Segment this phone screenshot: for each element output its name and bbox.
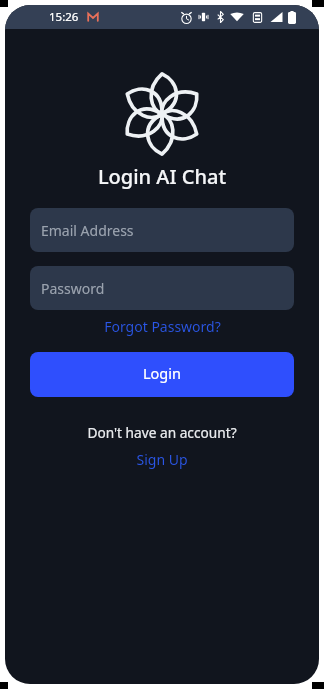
staticText: Login AI Chat — [5, 163, 319, 190]
staticText: Sign Up — [136, 450, 188, 469]
button[interactable]: Login — [30, 352, 294, 397]
staticText: 15:26 — [49, 9, 79, 25]
button[interactable]: Email Address — [30, 208, 294, 252]
staticText: Login — [143, 363, 181, 383]
button[interactable]: Password — [30, 266, 294, 310]
button[interactable]: Forgot Password? — [5, 315, 319, 337]
button[interactable]: Sign Up — [5, 449, 319, 469]
staticText: Password — [41, 279, 105, 298]
staticText: Email Address — [41, 221, 134, 240]
staticText: Forgot Password? — [104, 317, 221, 336]
staticText: Don't have an account? — [87, 423, 237, 442]
